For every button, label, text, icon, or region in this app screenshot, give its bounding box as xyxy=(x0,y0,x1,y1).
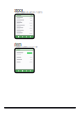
button[interactable]: Stock list screenshot xyxy=(14,14,35,39)
staticText: Item xyxy=(14,43,21,47)
staticText: Update counts in a tap xyxy=(14,45,37,48)
staticText: Track supplies across teams xyxy=(14,11,42,14)
button[interactable]: Item detail screenshot xyxy=(14,48,35,73)
staticText: Stock xyxy=(14,8,23,13)
